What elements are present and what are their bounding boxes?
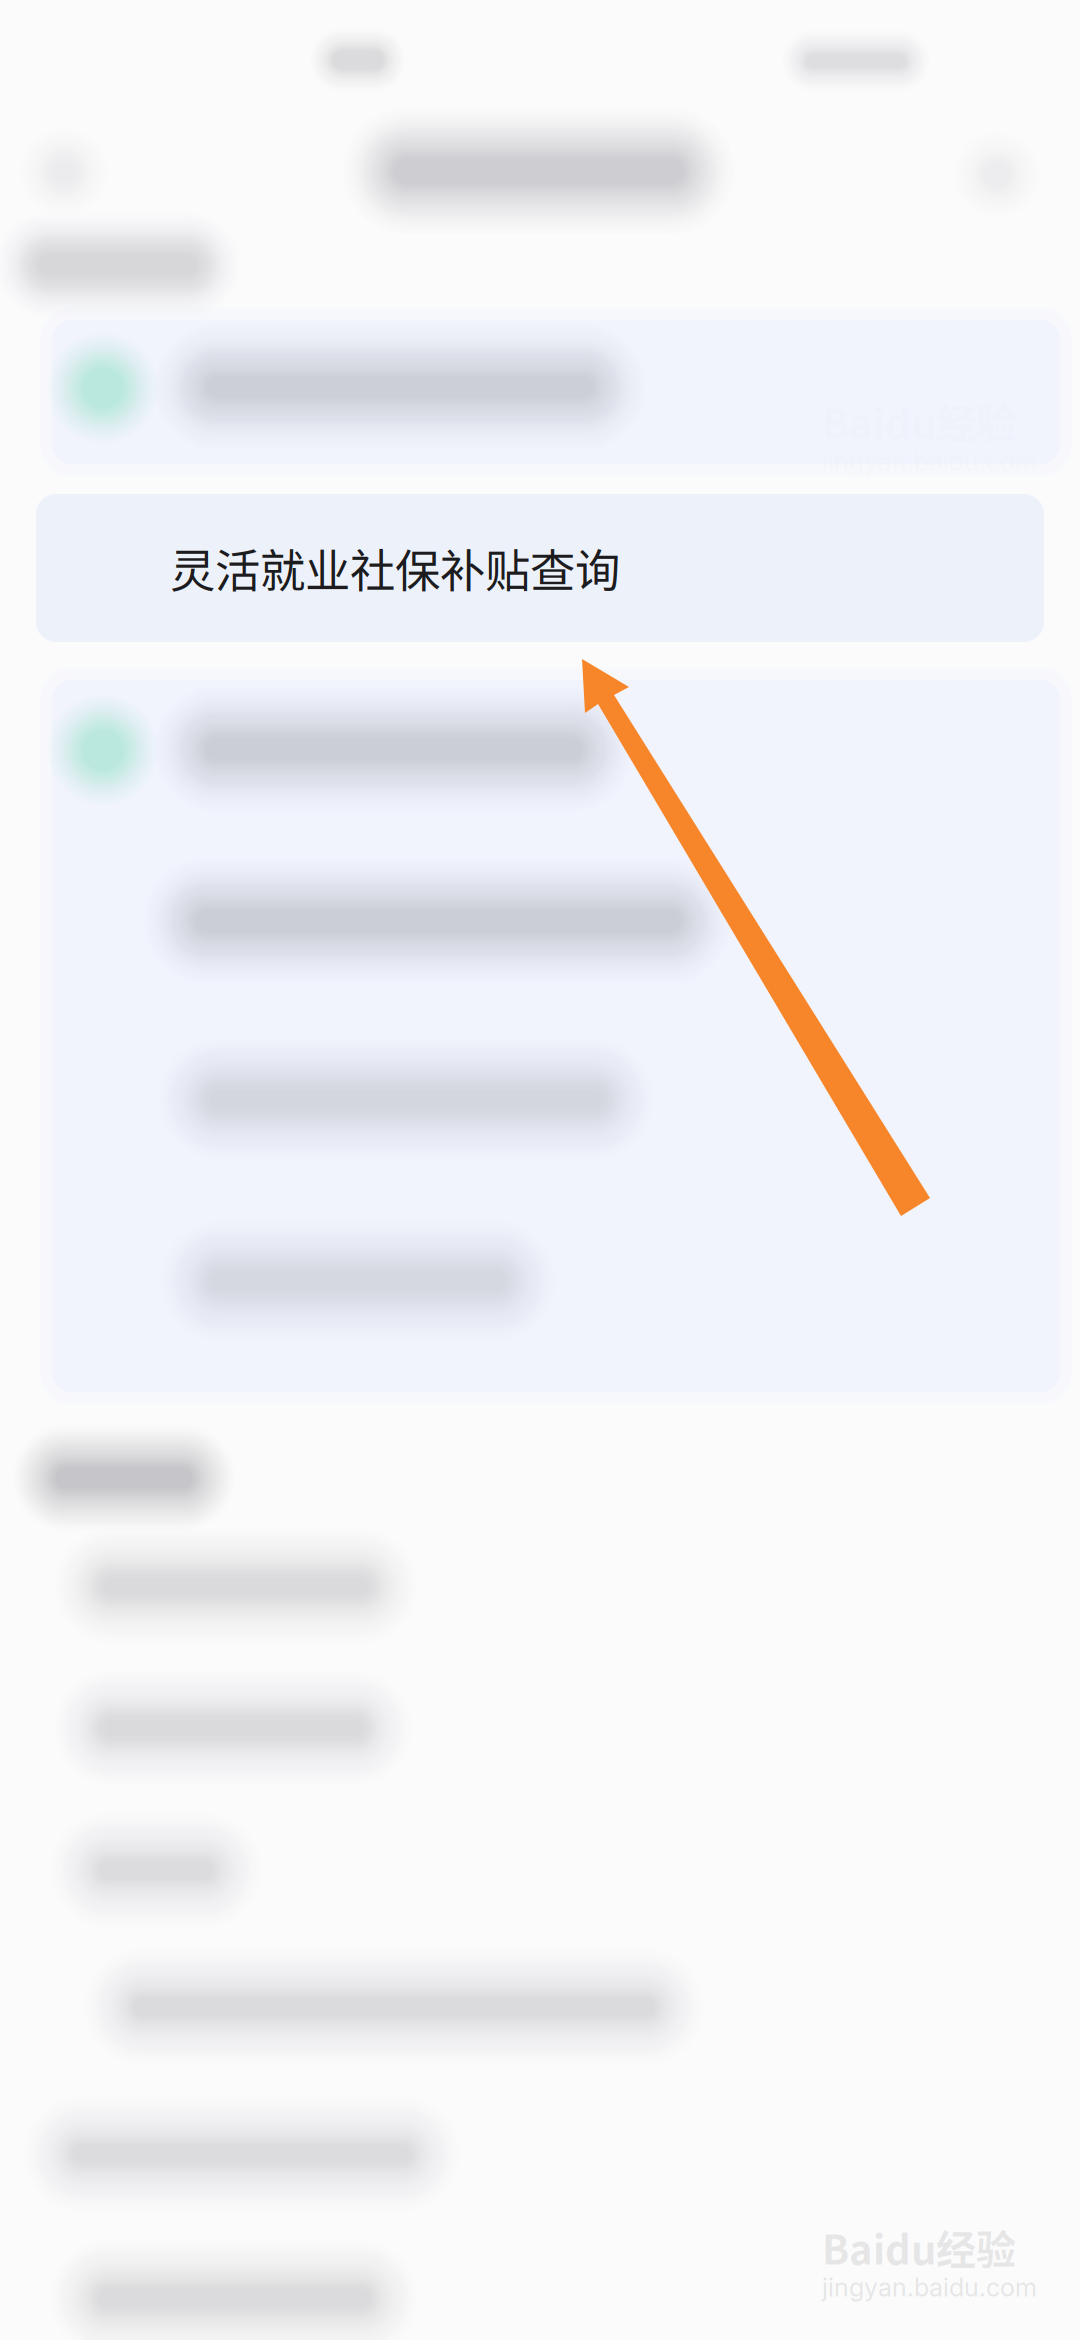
button[interactable] [0,0,1080,2340]
button[interactable] [0,0,1080,2340]
button[interactable]: Back [0,0,1080,2340]
button[interactable] [0,0,1080,2340]
button[interactable] [0,0,1080,2340]
staticText: 灵活就业社保补贴查询 [170,535,620,601]
button[interactable] [0,0,1080,2340]
button[interactable] [0,0,1080,2340]
button[interactable] [0,0,1080,2340]
button[interactable] [0,0,1080,2340]
button[interactable] [0,0,1080,2340]
staticText: jingyan.baidu.com [822,2272,1037,2303]
button[interactable]: More [0,0,1080,2340]
button[interactable] [0,0,1080,2340]
button[interactable] [0,0,1080,2340]
staticText: Baidu经验 [822,2218,1016,2276]
button[interactable]: 灵活就业社保补贴查询 [36,494,1044,642]
staticText: jingyan.baidu.com [822,446,1037,477]
